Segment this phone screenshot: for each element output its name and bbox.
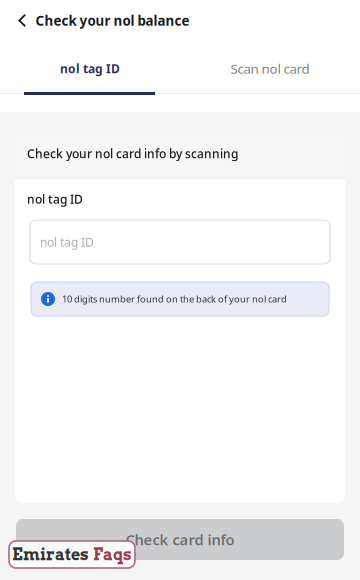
button[interactable]: Check card info [16,519,344,560]
staticText: nol tag ID [27,191,83,207]
staticText: Faqs [93,545,132,564]
staticText: Check card info [125,530,234,549]
button[interactable]: nol tag ID [0,45,180,95]
button[interactable]: Check your nol balance [0,0,360,45]
button[interactable]: Scan nol card [180,45,360,95]
staticText: Check your nol balance [35,12,189,29]
staticText: Emirates [12,545,89,564]
staticText: Check your nol card info by scanning [27,145,238,161]
staticText: Scan nol card [230,60,309,77]
staticText: nol tag ID [40,234,94,250]
staticText: nol tag ID [60,60,120,76]
staticText: 10 digits number found on the back of yo… [62,293,287,305]
